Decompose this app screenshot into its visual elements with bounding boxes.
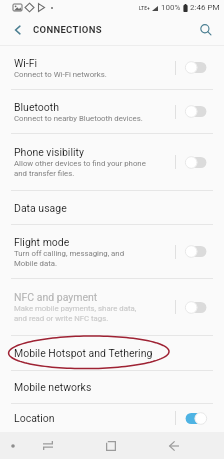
- staticText: Mobile Hotspot and Tethering: [14, 347, 153, 359]
- staticText: Flight mode: [14, 236, 70, 248]
- button[interactable]: Off: [185, 105, 207, 118]
- staticText: Make mobile payments, share data, and re…: [14, 304, 137, 323]
- button[interactable]: Back: [156, 432, 192, 459]
- staticText: Location: [14, 412, 55, 424]
- button[interactable]: NFC and payment: [0, 279, 224, 335]
- staticText: LTE+: [139, 5, 150, 11]
- staticText: NFC and payment: [14, 291, 98, 303]
- button[interactable]: Data usage: [0, 191, 224, 224]
- staticText: Connect to Wi-Fi networks.: [14, 70, 107, 79]
- button[interactable]: Bluetooth: [0, 90, 224, 133]
- button[interactable]: Off: [185, 301, 207, 314]
- staticText: Wi-Fi: [14, 57, 38, 69]
- staticText: Bluetooth: [14, 101, 59, 113]
- staticText: Data usage: [14, 202, 67, 214]
- button[interactable]: Off: [185, 61, 207, 74]
- button[interactable]: Recent apps: [30, 432, 66, 459]
- button[interactable]: Flight mode: [0, 225, 224, 278]
- button[interactable]: Wi-Fi: [0, 46, 224, 89]
- button[interactable]: Off: [185, 156, 207, 169]
- staticText: Mobile networks: [14, 381, 92, 393]
- button[interactable]: Navigate up: [6, 18, 30, 42]
- button[interactable]: Location: [0, 404, 224, 432]
- staticText: Allow other devices to find your phone a…: [14, 159, 146, 178]
- staticText: 100%: [161, 3, 181, 12]
- staticText: Turn off calling, messaging, and Mobile …: [14, 249, 125, 268]
- staticText: CONNECTIONS: [33, 24, 102, 35]
- button[interactable]: Phone visibility: [0, 134, 224, 190]
- button[interactable]: Search: [194, 18, 218, 42]
- button[interactable]: Mobile networks: [0, 371, 224, 403]
- button[interactable]: Home: [93, 432, 129, 459]
- button[interactable]: On: [185, 412, 207, 425]
- button[interactable]: Off: [185, 245, 207, 258]
- staticText: Connect to nearby Bluetooth devices.: [14, 114, 143, 123]
- staticText: 2:46 PM: [190, 3, 220, 12]
- staticText: Phone visibility: [14, 146, 84, 158]
- button[interactable]: Mobile Hotspot and Tethering: [0, 336, 224, 370]
